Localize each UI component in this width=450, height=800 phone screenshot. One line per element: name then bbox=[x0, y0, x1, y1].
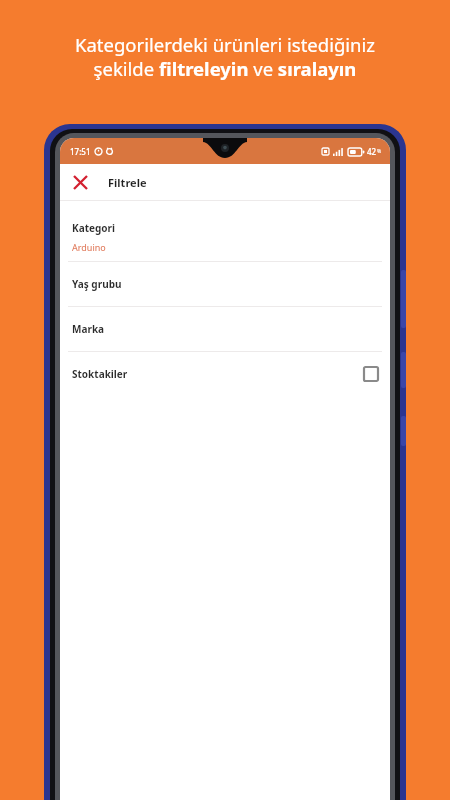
button[interactable]: Kapat bbox=[66, 168, 94, 196]
button[interactable]: Kategori bbox=[60, 215, 390, 261]
staticText: 42 bbox=[367, 146, 377, 157]
button[interactable]: Stoktakiler bbox=[60, 352, 390, 396]
staticText: Stoktakiler bbox=[72, 367, 128, 381]
staticText: Marka bbox=[72, 322, 105, 336]
staticText: Filtrele bbox=[108, 175, 147, 190]
staticText: 17:51 bbox=[70, 146, 91, 157]
staticText: Kategorilerdeki ürünleri istediğiniz şek… bbox=[18, 32, 432, 81]
button[interactable]: Marka bbox=[60, 307, 390, 351]
staticText: % bbox=[377, 148, 382, 155]
staticText: Yaş grubu bbox=[72, 277, 122, 291]
staticText: Kategori bbox=[72, 221, 115, 235]
staticText: Arduino bbox=[72, 241, 106, 253]
button[interactable]: Yaş grubu bbox=[60, 262, 390, 306]
